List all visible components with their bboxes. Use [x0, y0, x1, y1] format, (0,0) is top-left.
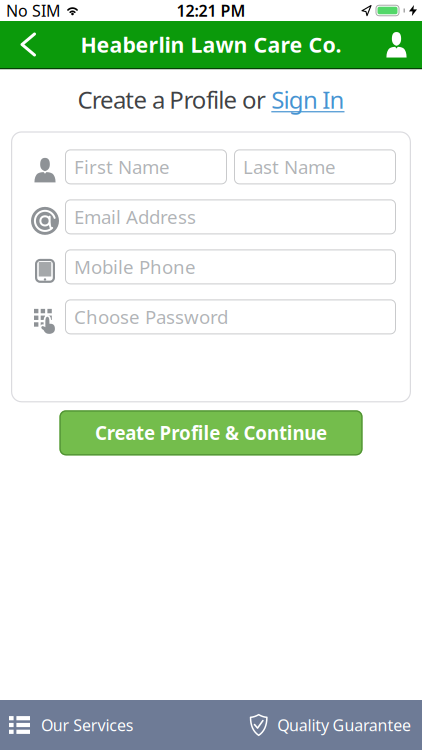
staticText: No SIM — [6, 0, 61, 21]
staticText: Heaberlin Lawn Care Co. — [80, 30, 341, 59]
button[interactable]: Last Name — [234, 149, 396, 184]
button[interactable]: Sign In — [271, 83, 344, 115]
staticText: Create Profile & Continue — [95, 420, 327, 445]
staticText: Choose Password — [74, 304, 228, 329]
button[interactable]: Quality Guarantee — [249, 700, 422, 750]
button[interactable]: Create Profile & Continue — [59, 410, 362, 455]
staticText: Mobile Phone — [74, 254, 196, 279]
staticText: Quality Guarantee — [277, 714, 411, 736]
button[interactable]: Mobile Phone — [65, 249, 396, 284]
button[interactable]: First Name — [65, 149, 227, 184]
staticText: Create a Profile or — [77, 83, 271, 115]
staticText: First Name — [74, 154, 170, 179]
staticText: 12:21 PM — [176, 0, 245, 21]
staticText: Our Services — [41, 714, 134, 736]
button[interactable]: Choose Password — [65, 299, 396, 334]
button[interactable]: Our Services — [0, 700, 134, 750]
staticText: Sign In — [271, 83, 344, 115]
button[interactable]: Back — [0, 21, 48, 68]
staticText: Email Address — [74, 204, 196, 229]
button[interactable]: Account — [376, 21, 422, 68]
staticText: Last Name — [243, 154, 336, 179]
button[interactable]: Email Address — [65, 199, 396, 234]
